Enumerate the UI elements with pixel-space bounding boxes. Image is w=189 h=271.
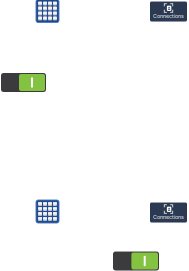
button[interactable]: Toggle switch [1, 73, 46, 92]
button[interactable]: Keypad [36, 200, 59, 223]
staticText: Connections [153, 214, 184, 220]
button[interactable]: Connections [150, 1, 187, 21]
button[interactable]: Connections [150, 202, 187, 222]
staticText: Connections [153, 13, 184, 19]
button[interactable]: Toggle switch [113, 251, 159, 270]
button[interactable]: Keypad [36, 0, 59, 22]
